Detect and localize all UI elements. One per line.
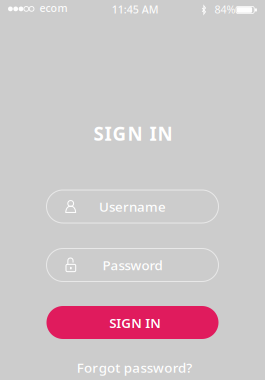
button[interactable]: SIGN IN [46,306,218,339]
staticText: 84% [215,2,236,16]
button[interactable]: Username [46,190,218,223]
button[interactable]: Forgot password? [77,359,192,376]
staticText: Username [99,198,166,215]
staticText: SIGN IN [93,121,172,146]
staticText: Forgot password? [77,359,192,376]
staticText: Password [102,256,162,274]
staticText: ecom [39,1,67,15]
staticText: SIGN IN [109,314,161,332]
staticText: 11:45 AM [112,2,159,16]
button[interactable]: Password [46,248,218,281]
